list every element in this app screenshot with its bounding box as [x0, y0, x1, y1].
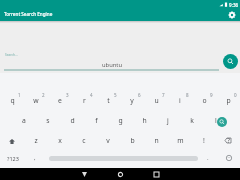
button[interactable]: h [132, 109, 156, 129]
staticText: f [95, 116, 98, 125]
button[interactable]: x [48, 129, 72, 149]
staticText: e [58, 96, 62, 105]
button[interactable]: Shift [0, 129, 24, 149]
button[interactable]: b [120, 129, 144, 149]
staticText: ?123 [7, 155, 19, 162]
button[interactable]: ?123 [0, 148, 26, 168]
staticText: 1 [18, 92, 21, 98]
staticText: d [70, 116, 75, 125]
button[interactable]: ? [216, 129, 240, 149]
staticText: k [190, 116, 194, 125]
staticText: s [46, 116, 50, 125]
staticText: g [118, 116, 123, 125]
button[interactable]: Settings [225, 8, 238, 21]
button[interactable]: Search [223, 54, 238, 69]
button[interactable]: 4 [72, 89, 96, 109]
button[interactable]: Back [73, 168, 95, 180]
staticText: Torrent Search Engine [4, 11, 53, 17]
button[interactable]: 7 [144, 89, 168, 109]
staticText: o [202, 96, 207, 105]
staticText: x [58, 136, 62, 145]
staticText: l [215, 116, 217, 125]
staticText: . [207, 154, 209, 162]
staticText: 5 [114, 92, 117, 98]
staticText: c [82, 136, 86, 145]
button[interactable]: Recents [145, 168, 167, 180]
staticText: 8 [186, 92, 189, 98]
staticText: b [130, 136, 135, 145]
staticText: Search... [5, 53, 18, 57]
button[interactable]: 8 [168, 89, 192, 109]
staticText: ? [227, 136, 230, 145]
staticText: u [154, 96, 159, 105]
button[interactable]: 9 [192, 89, 216, 109]
staticText: y [130, 96, 134, 105]
button[interactable]: 2 [24, 89, 48, 109]
button[interactable]: 3 [48, 89, 72, 109]
staticText: p [226, 96, 231, 105]
button[interactable]: l [204, 109, 228, 129]
button[interactable]: f [84, 109, 108, 129]
button[interactable]: z [24, 129, 48, 149]
staticText: 9 [210, 92, 213, 98]
staticText: j [167, 116, 169, 125]
staticText: v [106, 136, 110, 145]
staticText: z [34, 136, 38, 145]
staticText: q [10, 96, 15, 105]
button[interactable]: 1 [0, 89, 24, 109]
staticText: 4 [90, 92, 93, 98]
button[interactable]: 0 [216, 89, 240, 109]
staticText: n [154, 136, 159, 145]
button[interactable]: a [12, 109, 36, 129]
staticText: r [83, 96, 86, 105]
staticText: ubuntu [102, 61, 122, 69]
button[interactable]: Comma [26, 148, 44, 168]
button[interactable]: Home [109, 168, 131, 180]
staticText: a [22, 116, 26, 125]
button[interactable]: v [96, 129, 120, 149]
staticText: 2 [42, 92, 45, 98]
staticText: ! [203, 136, 205, 145]
staticText: t [107, 96, 110, 105]
button[interactable]: ! [192, 129, 216, 149]
button[interactable]: Backspace [216, 129, 240, 149]
button[interactable]: s [36, 109, 60, 129]
button[interactable]: m [168, 129, 192, 149]
button[interactable]: Emoji [218, 148, 240, 168]
staticText: m [177, 136, 184, 145]
button[interactable]: d [60, 109, 84, 129]
button[interactable]: k [180, 109, 204, 129]
staticText: i [179, 96, 181, 105]
staticText: 0 [234, 92, 237, 98]
button[interactable]: 5 [96, 89, 120, 109]
staticText: 7 [162, 92, 165, 98]
button[interactable]: j [156, 109, 180, 129]
staticText: w [33, 96, 39, 105]
staticText: h [142, 116, 147, 125]
button[interactable]: n [144, 129, 168, 149]
button[interactable]: c [72, 129, 96, 149]
button[interactable]: g [108, 109, 132, 129]
staticText: , [34, 154, 36, 162]
button[interactable]: 6 [120, 89, 144, 109]
button[interactable]: Search [212, 109, 232, 129]
staticText: 6 [138, 92, 141, 98]
button[interactable]: Space [44, 148, 198, 168]
staticText: 9:36 [229, 2, 239, 7]
staticText: 3 [66, 92, 69, 98]
